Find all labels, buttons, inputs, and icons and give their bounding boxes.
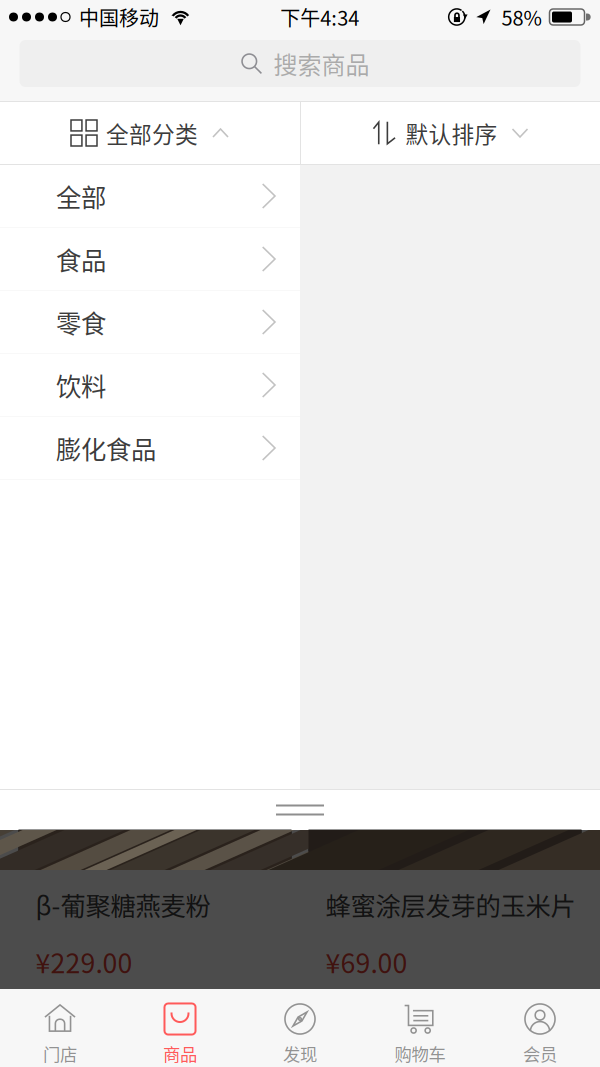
staticText: 膨化食品 xyxy=(56,430,156,466)
button[interactable]: 发现 xyxy=(240,989,360,1067)
staticText: 商品 xyxy=(163,1041,197,1066)
staticText: 默认排序 xyxy=(405,117,497,149)
button[interactable]: β-葡聚糖燕麦粉 xyxy=(18,829,291,989)
staticText: 蜂蜜涂层发芽的玉米片 xyxy=(325,886,575,923)
button[interactable]: 饮料 xyxy=(0,354,300,417)
staticText: ¥69.00 xyxy=(325,942,407,981)
staticText: 门店 xyxy=(43,1041,77,1066)
button[interactable]: 商品 xyxy=(120,989,240,1067)
button[interactable]: 蜂蜜涂层发芽的玉米片 xyxy=(308,829,581,989)
staticText: 发现 xyxy=(283,1041,317,1066)
staticText: 全部分类 xyxy=(106,117,198,149)
staticText: 搜索商品 xyxy=(273,46,369,81)
staticText: ¥229.00 xyxy=(35,942,132,981)
button[interactable]: 膨化食品 xyxy=(0,417,300,480)
staticText: 中国移动 xyxy=(79,2,159,31)
button[interactable]: 全部分类 xyxy=(0,101,300,165)
button[interactable]: 默认排序 xyxy=(301,101,600,165)
button[interactable]: 门店 xyxy=(0,989,120,1067)
button[interactable]: 会员 xyxy=(480,989,600,1067)
staticText: 购物车 xyxy=(394,1041,445,1066)
button[interactable]: 搜索商品 xyxy=(19,34,580,101)
staticText: 零食 xyxy=(56,304,106,340)
button[interactable]: 全部 xyxy=(0,165,300,228)
staticText: 全部 xyxy=(56,178,106,214)
staticText: 58% xyxy=(501,2,541,31)
staticText: 饮料 xyxy=(56,367,106,403)
staticText: β-葡聚糖燕麦粉 xyxy=(35,886,210,923)
button[interactable]: 食品 xyxy=(0,228,300,291)
button[interactable]: 零食 xyxy=(0,291,300,354)
button[interactable]: 购物车 xyxy=(360,989,480,1067)
staticText: 食品 xyxy=(56,241,106,277)
staticText: 下午4:34 xyxy=(280,2,359,31)
staticText: 会员 xyxy=(523,1041,557,1066)
